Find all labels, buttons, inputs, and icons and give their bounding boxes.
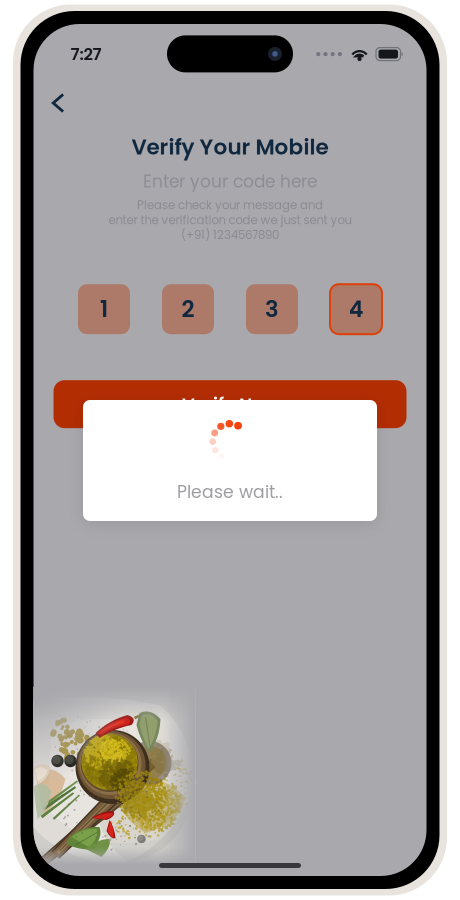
staticText: (+91) 1234567890 xyxy=(181,227,279,243)
staticText: Please wait.. xyxy=(177,480,283,504)
button[interactable]: 4 xyxy=(330,284,382,334)
button[interactable]: 2 xyxy=(162,284,214,334)
staticText: 2 xyxy=(181,293,194,325)
staticText: Verify Your Mobile xyxy=(131,132,328,162)
button[interactable]: Back xyxy=(33,88,97,118)
staticText: Enter your code here xyxy=(143,170,317,193)
staticText: Verify Now xyxy=(182,392,278,417)
staticText: Please check your message and xyxy=(137,197,323,213)
button[interactable]: 3 xyxy=(246,284,298,334)
staticText: 1 xyxy=(100,293,108,325)
button[interactable]: Verify Now xyxy=(53,380,406,428)
button[interactable]: 1 xyxy=(78,284,130,334)
staticText: 3 xyxy=(265,293,279,325)
staticText: enter the verification code we just sent… xyxy=(108,212,351,228)
staticText: 4 xyxy=(348,293,363,325)
staticText: 7:27 xyxy=(70,42,101,66)
